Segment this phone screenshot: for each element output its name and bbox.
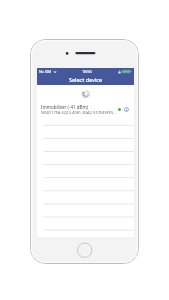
button[interactable]: Device info — [124, 107, 129, 112]
button[interactable] — [37, 173, 134, 189]
button[interactable]: Immobilizer (-41 dBm) — [37, 101, 134, 125]
button[interactable] — [37, 221, 134, 237]
staticText: 5B3D17FA-6223-4081-83A2-557E49FE5... — [41, 110, 117, 115]
button[interactable] — [37, 125, 134, 141]
staticText: Immobilizer (-41 dBm) — [41, 104, 88, 110]
button[interactable] — [37, 189, 134, 205]
button[interactable] — [37, 205, 134, 221]
button[interactable] — [37, 141, 134, 157]
staticText: No SIM — [39, 69, 52, 74]
staticText: 18:56 — [82, 69, 92, 74]
button[interactable] — [37, 157, 134, 173]
staticText: Select device — [69, 76, 103, 83]
